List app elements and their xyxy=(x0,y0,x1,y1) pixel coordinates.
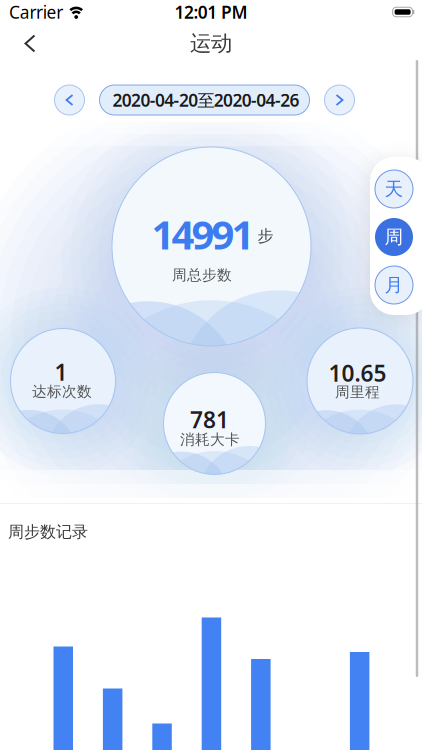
staticText: 周步数记录 xyxy=(8,522,88,542)
button[interactable]: 天 xyxy=(375,170,413,208)
staticText: 天 xyxy=(384,177,403,200)
staticText: 周总步数 xyxy=(172,266,232,284)
staticText: 运动 xyxy=(190,30,232,57)
staticText: 月 xyxy=(384,273,403,296)
staticText: 周 xyxy=(384,225,403,248)
staticText: 达标次数 xyxy=(32,382,92,400)
button[interactable]: Next week xyxy=(324,85,354,115)
button[interactable]: Back xyxy=(0,23,52,63)
staticText: 781 xyxy=(190,404,229,434)
staticText: 10.65 xyxy=(328,358,386,388)
button[interactable]: Previous week xyxy=(54,85,84,115)
staticText: 12:01 PM xyxy=(175,0,247,23)
staticText: 消耗大卡 xyxy=(180,430,240,448)
button[interactable]: 2020-04-20至2020-04-26 xyxy=(99,85,309,115)
staticText: 1 xyxy=(54,357,67,387)
staticText: 2020-04-20至2020-04-26 xyxy=(112,88,299,111)
staticText: 14991 xyxy=(151,207,254,260)
staticText: Carrier xyxy=(9,0,63,23)
button[interactable]: 月 xyxy=(375,266,413,304)
button[interactable]: 周 xyxy=(375,218,413,256)
staticText: 周里程 xyxy=(335,383,380,401)
staticText: 步 xyxy=(257,226,273,246)
